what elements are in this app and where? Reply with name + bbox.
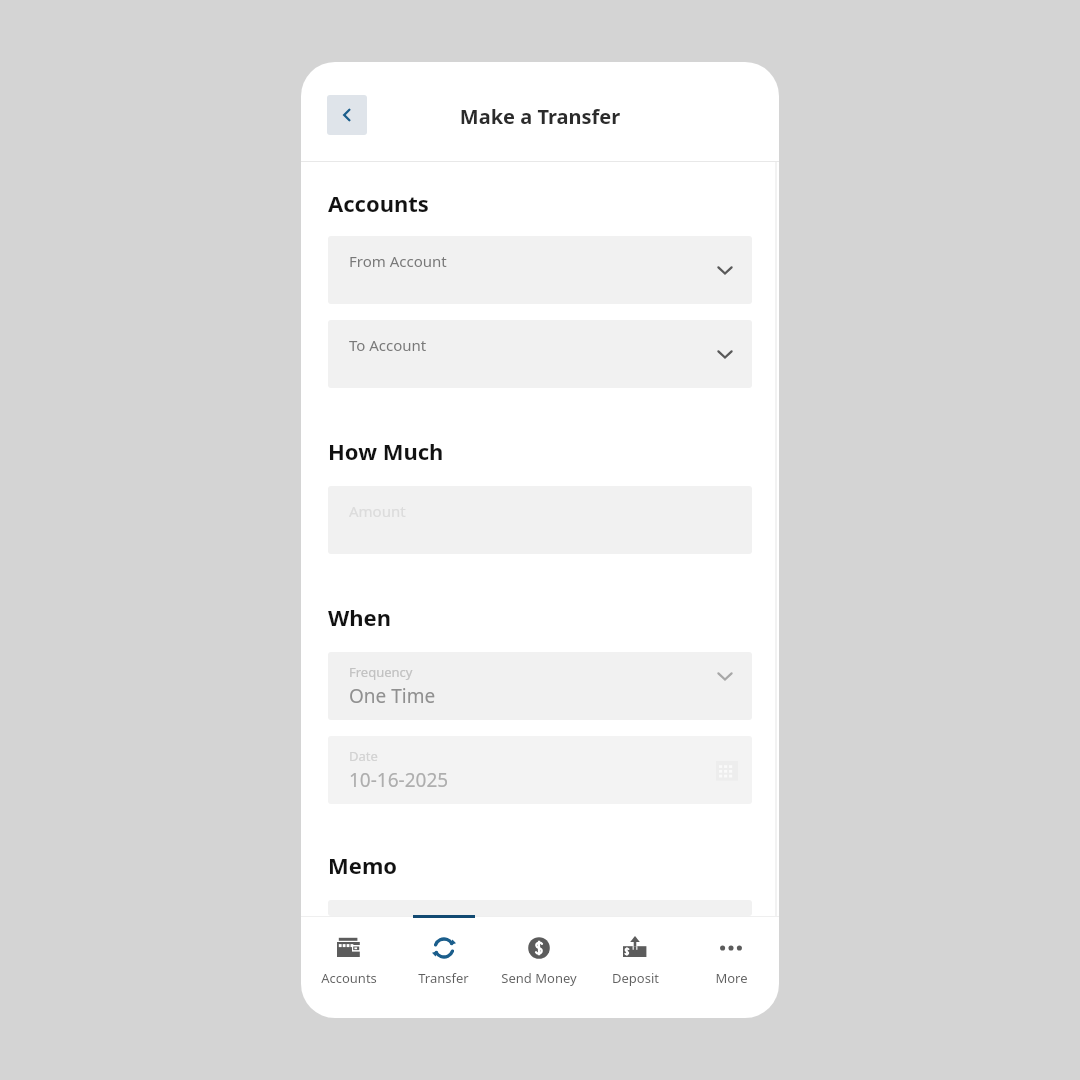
button[interactable]: Transfer [396,917,491,1017]
button[interactable]: Send Money [491,917,587,1017]
button[interactable]: From Account [328,236,752,304]
button[interactable]: Description (Optional) [328,900,752,916]
staticText: Transfer [418,969,469,987]
staticText: 10-16-2025 [349,767,449,793]
staticText: Deposit [612,969,659,987]
button[interactable]: More [683,917,779,1017]
staticText: More [715,969,748,987]
staticText: From Account [349,251,447,271]
staticText: Description (Optional) [349,915,504,916]
staticText: When [328,602,392,632]
staticText: One Time [349,683,436,709]
button[interactable]: Back [327,95,367,135]
button[interactable]: Deposit [587,917,683,1017]
staticText: To Account [349,335,427,355]
staticText: Memo [328,850,398,880]
button[interactable]: Date [328,736,752,804]
button[interactable]: To Account [328,320,752,388]
staticText: Amount [349,501,406,521]
staticText: Accounts [328,188,429,218]
staticText: Frequency [349,663,413,681]
staticText: Date [349,747,378,765]
button[interactable]: Frequency [328,652,752,720]
staticText: How Much [328,436,444,466]
staticText: Make a Transfer [301,103,779,130]
staticText: Accounts [321,969,377,987]
staticText: Send Money [501,969,577,987]
button[interactable]: Accounts [301,917,396,1017]
